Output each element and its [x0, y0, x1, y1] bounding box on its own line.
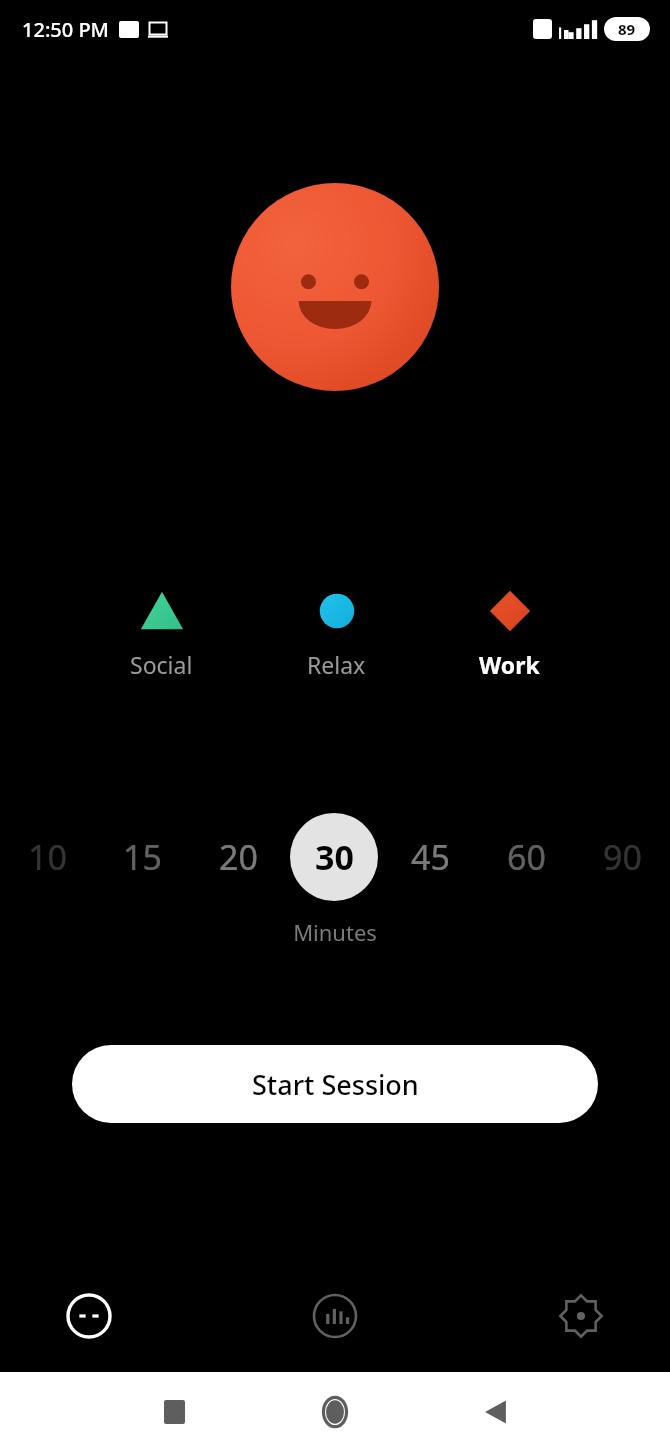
button[interactable]: 60 [478, 811, 574, 903]
staticText: 60 [507, 834, 546, 880]
button[interactable]: Settings [550, 1285, 612, 1347]
staticText: 15 [123, 834, 162, 880]
staticText: 90 [603, 834, 642, 880]
staticText: 12:50 PM [22, 16, 109, 43]
button[interactable]: 20 [190, 811, 286, 903]
button[interactable]: Stats [304, 1285, 366, 1347]
button[interactable]: Work [465, 581, 554, 686]
staticText: Social [130, 649, 193, 680]
staticText: 89 [618, 19, 636, 39]
button[interactable]: 30 [286, 811, 382, 903]
staticText: Start Session [252, 1066, 419, 1103]
button[interactable]: 10 [0, 811, 95, 903]
button[interactable]: 15 [95, 811, 190, 903]
button[interactable]: Start Session [72, 1045, 598, 1123]
button[interactable]: 45 [382, 811, 478, 903]
staticText: 10 [28, 834, 67, 880]
button[interactable]: Relax [293, 581, 380, 686]
staticText: Minutes [0, 917, 670, 947]
button[interactable]: Recents [150, 1388, 198, 1436]
staticText: Work [479, 649, 540, 680]
button[interactable]: Social [116, 581, 207, 686]
button[interactable]: Home [311, 1388, 359, 1436]
button[interactable]: Home [58, 1285, 120, 1347]
button[interactable]: 90 [574, 811, 670, 903]
staticText: 20 [219, 834, 258, 880]
staticText: Relax [307, 649, 366, 680]
staticText: 30 [315, 834, 354, 880]
staticText: 45 [411, 834, 450, 880]
button[interactable]: Back [472, 1388, 520, 1436]
